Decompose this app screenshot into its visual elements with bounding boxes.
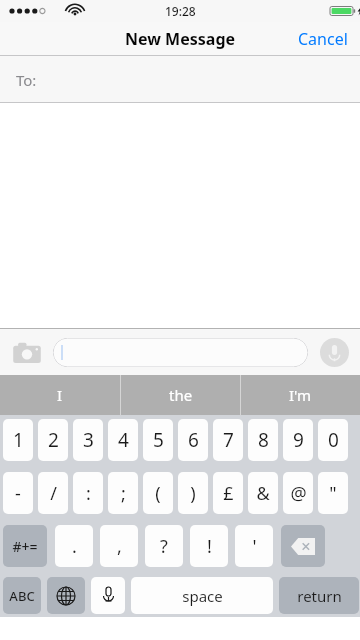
staticText: space — [182, 586, 223, 606]
button[interactable]: space — [131, 577, 273, 614]
button[interactable]: Dictate — [316, 334, 352, 370]
button[interactable]: ? — [145, 525, 183, 567]
button[interactable]: 2 — [38, 419, 68, 461]
staticText: 9 — [293, 427, 304, 453]
button[interactable]: #+= — [3, 525, 47, 567]
staticText: " — [329, 481, 337, 506]
button[interactable]: I — [0, 375, 120, 415]
button[interactable]: / — [38, 472, 68, 514]
staticText: & — [256, 481, 270, 506]
staticText: 4 — [118, 427, 129, 453]
staticText: ( — [155, 481, 161, 506]
button[interactable]: 9 — [283, 419, 313, 461]
staticText: ABC — [9, 587, 35, 605]
button[interactable]: ( — [143, 472, 173, 514]
staticText: ! — [207, 534, 212, 559]
button[interactable]: Cancel — [298, 22, 348, 56]
button[interactable]: & — [248, 472, 278, 514]
button[interactable]: To: — [0, 56, 360, 103]
staticText: @ — [290, 481, 307, 506]
staticText: 1 — [13, 427, 24, 453]
staticText: Cancel — [298, 28, 348, 50]
staticText: 6 — [188, 427, 199, 453]
staticText: 5 — [153, 427, 164, 453]
button[interactable]: 3 — [73, 419, 103, 461]
staticText: 8 — [258, 427, 269, 453]
button[interactable]: 1 — [3, 419, 33, 461]
staticText: 3 — [83, 427, 94, 453]
staticText: To: — [16, 70, 37, 90]
button[interactable]: ABC — [3, 577, 41, 614]
staticText: the — [169, 385, 193, 405]
button[interactable]: @ — [283, 472, 313, 514]
button[interactable]: " — [318, 472, 348, 514]
button[interactable]: Dictation — [91, 577, 125, 614]
staticText: I'm — [289, 385, 312, 405]
staticText: New Message — [125, 28, 236, 50]
button[interactable]: £ — [213, 472, 243, 514]
staticText: ' — [252, 534, 257, 559]
button[interactable]: I'm — [241, 375, 360, 415]
button[interactable]: ' — [235, 525, 273, 567]
button[interactable]: 0 — [318, 419, 348, 461]
staticText: , — [117, 534, 122, 559]
button[interactable]: the — [121, 375, 240, 415]
button[interactable]: 7 — [213, 419, 243, 461]
button[interactable]: Next keyboard — [47, 577, 85, 614]
button[interactable]: Camera — [10, 337, 44, 367]
staticText: I — [57, 385, 63, 405]
staticText: ) — [190, 481, 196, 506]
button[interactable]: return — [279, 577, 359, 614]
staticText: 7 — [223, 427, 234, 453]
button[interactable] — [53, 338, 308, 367]
staticText: 19:28 — [165, 3, 196, 19]
button[interactable]: : — [73, 472, 103, 514]
staticText: 2 — [48, 427, 59, 453]
button[interactable]: 8 — [248, 419, 278, 461]
staticText: / — [50, 481, 57, 506]
button[interactable]: , — [100, 525, 138, 567]
button[interactable]: - — [3, 472, 33, 514]
button[interactable]: ) — [178, 472, 208, 514]
button[interactable]: ! — [190, 525, 228, 567]
staticText: : — [86, 481, 91, 506]
staticText: ? — [160, 534, 168, 559]
button[interactable]: 6 — [178, 419, 208, 461]
staticText: £ — [223, 481, 234, 506]
staticText: ; — [121, 481, 126, 506]
button[interactable]: 5 — [143, 419, 173, 461]
button[interactable]: ; — [108, 472, 138, 514]
staticText: return — [297, 586, 342, 606]
button[interactable]: . — [55, 525, 93, 567]
button[interactable]: 4 — [108, 419, 138, 461]
staticText: . — [72, 534, 77, 559]
staticText: - — [15, 481, 21, 506]
button[interactable]: Delete — [281, 525, 325, 567]
staticText: #+= — [12, 537, 38, 556]
staticText: 0 — [328, 427, 339, 453]
